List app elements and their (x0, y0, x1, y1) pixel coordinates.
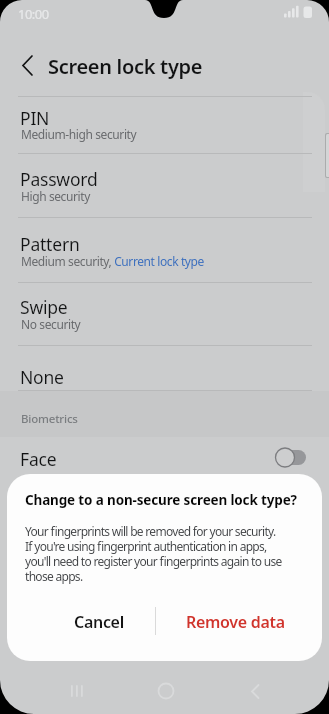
button[interactable]: Remove data (165, 602, 305, 642)
staticText: PIN (20, 106, 50, 130)
staticText: Biometrics (21, 411, 78, 427)
staticText: Cancel (74, 611, 124, 633)
staticText: Pattern (20, 232, 80, 256)
staticText: Change to a non-secure screen lock type? (25, 491, 297, 509)
staticText: Screen lock type (48, 53, 203, 80)
button[interactable]: Cancel (32, 602, 166, 642)
button[interactable]: Password (0, 153, 329, 217)
button[interactable] (8, 50, 42, 84)
staticText: No security (21, 316, 81, 332)
staticText: High security (21, 188, 90, 204)
button[interactable]: None (0, 345, 329, 390)
staticText: 10:00 (18, 5, 49, 23)
staticText: None (20, 365, 64, 389)
staticText: Medium security, Current lock type (21, 253, 204, 269)
button[interactable]: Face (0, 437, 329, 487)
staticText: Your fingerprints will be removed for yo… (25, 523, 322, 584)
button[interactable]: Swipe (0, 282, 329, 345)
staticText: Password (20, 167, 98, 191)
button[interactable]: Pattern (0, 217, 329, 282)
staticText: Remove data (186, 611, 285, 633)
staticText: Medium-high security (21, 126, 137, 142)
staticText: Swipe (20, 295, 68, 319)
button[interactable]: PIN (0, 96, 329, 153)
staticText: Face (20, 447, 57, 471)
